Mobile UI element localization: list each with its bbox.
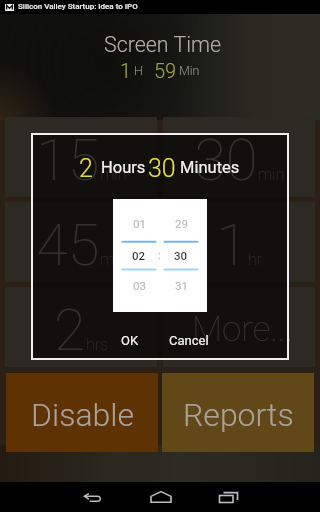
staticText: min	[100, 250, 127, 269]
staticText: 03	[133, 279, 146, 292]
staticText: Screen Time	[104, 32, 221, 57]
staticText: Silicon Valley Startup: Idea to IPO	[18, 2, 138, 11]
button[interactable]: 1	[163, 202, 315, 282]
staticText: 30	[174, 249, 188, 262]
button[interactable]: 15	[5, 117, 157, 197]
staticText: 02	[132, 249, 146, 262]
staticText: Disable	[31, 396, 134, 434]
staticText: 01	[133, 217, 146, 230]
staticText: Reports	[183, 396, 294, 434]
staticText: OK	[121, 333, 139, 348]
staticText: hr	[248, 250, 263, 269]
button[interactable]: Back	[70, 482, 118, 512]
button[interactable]: OK	[111, 329, 149, 351]
staticText: 30	[148, 154, 176, 183]
staticText: 2	[79, 154, 93, 183]
staticText: More...	[192, 309, 293, 350]
staticText: Minutes	[180, 158, 240, 177]
button[interactable]: Home	[137, 482, 185, 512]
staticText: 15	[36, 126, 100, 194]
staticText: 31	[175, 279, 188, 292]
staticText: 1	[120, 59, 132, 82]
button[interactable]: 45	[5, 202, 157, 282]
staticText: hrs	[86, 335, 109, 354]
staticText: Min	[179, 63, 200, 78]
staticText: 59	[154, 59, 177, 82]
button[interactable]: Recent apps	[205, 482, 253, 512]
staticText: min	[258, 165, 285, 184]
staticText: H	[134, 63, 143, 78]
staticText: min	[100, 165, 127, 184]
staticText: :	[158, 249, 161, 262]
button[interactable]: 2	[5, 287, 157, 367]
staticText: Hours	[101, 158, 146, 177]
button[interactable]: Cancel	[161, 329, 217, 351]
staticText: 30	[194, 126, 258, 194]
button[interactable]: 30	[163, 117, 315, 197]
button[interactable]: More...	[163, 287, 315, 367]
button[interactable]: Reports	[162, 373, 314, 452]
staticText: 2	[54, 296, 86, 364]
staticText: 29	[175, 217, 188, 230]
staticText: 45	[36, 211, 100, 279]
button[interactable]: Disable	[6, 373, 158, 452]
staticText: Cancel	[169, 333, 209, 348]
staticText: 1	[216, 211, 248, 279]
